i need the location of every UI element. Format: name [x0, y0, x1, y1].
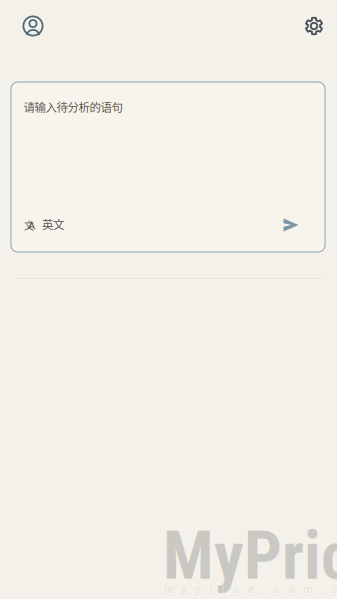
- staticText: 英文: [42, 216, 64, 232]
- button[interactable]: Send: [272, 210, 310, 240]
- button[interactable]: 文: [24, 212, 82, 236]
- staticText: 文: [24, 218, 34, 232]
- button[interactable]: Account: [12, 5, 54, 47]
- button[interactable]: Settings: [293, 5, 335, 47]
- staticText: MyPrice: [163, 517, 337, 595]
- staticText: myprice.com.cn: [164, 583, 337, 595]
- staticText: 请输入待分析的语句: [23, 98, 122, 115]
